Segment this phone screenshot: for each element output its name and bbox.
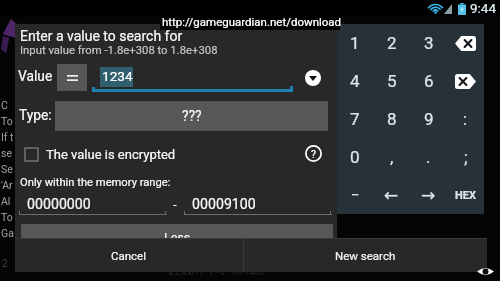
- button[interactable]: ???: [55, 101, 328, 131]
- staticText: :: [463, 109, 468, 129]
- button[interactable]: Show overlay: [474, 262, 496, 280]
- button[interactable]: 8: [373, 100, 410, 138]
- other: Backspace: [455, 36, 476, 51]
- button[interactable]: Help: [303, 143, 324, 164]
- staticText: ←: [384, 185, 399, 205]
- staticText: ???: [182, 108, 202, 124]
- button[interactable]: The value is encrypted: [21, 144, 176, 164]
- staticText: 00000000: [27, 196, 91, 213]
- staticText: 0: [350, 147, 360, 167]
- staticText: 1234: [102, 68, 133, 84]
- button[interactable]: 7: [337, 100, 373, 138]
- staticText: Al: [1, 195, 11, 207]
- button[interactable]: .: [410, 138, 447, 176]
- staticText: Less: [164, 230, 191, 245]
- button[interactable]: −: [337, 176, 373, 214]
- staticText: a.2:4:b - ) x - 6' 66-1400: [168, 267, 264, 277]
- staticText: http://gameguardian.net/download: [162, 15, 342, 28]
- staticText: New search: [335, 249, 396, 262]
- button[interactable]: ,: [373, 138, 410, 176]
- button[interactable]: Delete: [447, 62, 484, 100]
- button[interactable]: 6: [410, 62, 447, 100]
- staticText: Only within the memory range:: [20, 176, 171, 189]
- button[interactable]: HEX: [447, 176, 484, 214]
- staticText: Se: [1, 163, 13, 175]
- button[interactable]: ;: [447, 138, 484, 176]
- button[interactable]: New search: [244, 238, 487, 272]
- staticText: To: [1, 211, 13, 223]
- staticText: Type:: [19, 107, 52, 123]
- button[interactable]: →: [410, 176, 447, 214]
- staticText: Value: [18, 68, 53, 84]
- button[interactable]: 9: [410, 100, 447, 138]
- button[interactable]: Backspace: [447, 24, 484, 62]
- staticText: 2: [387, 33, 397, 53]
- staticText: HEX: [455, 189, 476, 202]
- staticText: 5: [387, 71, 397, 91]
- staticText: Cancel: [111, 249, 147, 262]
- staticText: 7: [350, 109, 360, 129]
- staticText: 9: [424, 109, 434, 129]
- button[interactable]: 1: [337, 24, 373, 62]
- staticText: 3: [424, 33, 434, 53]
- staticText: Input value from -1.8e+308 to 1.8e+308: [20, 44, 218, 57]
- staticText: 8: [387, 109, 397, 129]
- button[interactable]: Open value type dropdown: [305, 70, 321, 86]
- staticText: ;: [464, 147, 468, 167]
- button[interactable]: 4: [337, 62, 373, 100]
- button[interactable]: 3: [410, 24, 447, 62]
- button[interactable]: 5: [373, 62, 410, 100]
- staticText: To: [1, 115, 13, 127]
- staticText: If t: [1, 131, 14, 143]
- button[interactable]: ←: [373, 176, 410, 214]
- staticText: C: [1, 99, 8, 111]
- button[interactable]: Less: [21, 224, 333, 250]
- staticText: 00009100: [192, 196, 256, 213]
- staticText: 9:44: [470, 0, 497, 16]
- other: Delete: [455, 74, 476, 89]
- button[interactable]: :: [447, 100, 484, 138]
- button[interactable]: 0: [337, 138, 373, 176]
- staticText: 6: [424, 71, 434, 91]
- staticText: Enter a value to search for: [20, 28, 183, 44]
- staticText: →: [421, 185, 436, 205]
- staticText: 2: [2, 258, 8, 270]
- staticText: se: [1, 147, 12, 159]
- button[interactable]: Cancel: [15, 238, 243, 272]
- staticText: 'Ar: [1, 179, 13, 191]
- staticText: Ga: [1, 227, 14, 239]
- staticText: .: [426, 147, 431, 167]
- staticText: ,: [390, 147, 394, 167]
- staticText: −: [351, 186, 360, 204]
- staticText: -: [173, 197, 177, 212]
- staticText: 1: [350, 33, 360, 53]
- staticText: The value is encrypted: [46, 147, 176, 162]
- staticText: ?: [311, 148, 316, 160]
- button[interactable]: 2: [373, 24, 410, 62]
- button[interactable]: [57, 64, 87, 91]
- staticText: 4: [350, 71, 360, 91]
